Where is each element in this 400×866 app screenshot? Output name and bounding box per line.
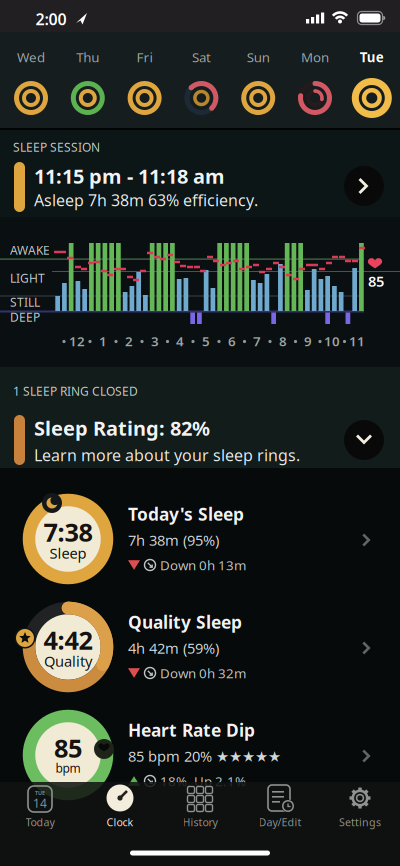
button[interactable]: 7:38 [0,486,400,592]
staticText: STILL [10,294,40,310]
staticText: Quality [44,651,92,671]
staticText: Tue [360,48,384,66]
button[interactable]: Settings [320,782,400,866]
button[interactable]: Mon [287,48,343,128]
staticText: Asleep 7h 38m 63% efficiency. [34,189,258,211]
button[interactable]: 85 [0,702,400,808]
staticText: LIGHT [10,270,45,286]
staticText: 3 [151,332,159,350]
staticText: 2 [125,332,133,350]
staticText: 4:42 [43,623,92,657]
staticText: Today [25,815,54,829]
staticText: Learn more about your sleep rings. [34,444,300,466]
button[interactable]: Day/Edit [240,782,320,866]
button[interactable]: History [160,782,240,866]
button[interactable]: TUE [0,782,80,866]
button[interactable]: Tue [344,48,400,128]
staticText: 11:15 pm - 11:18 am [34,163,225,189]
staticText: Sleep Rating: 82% [34,415,210,441]
staticText: Sat [192,48,211,66]
staticText: 1 SLEEP RING CLOSED [13,383,138,399]
button[interactable]: Wed [3,48,59,128]
staticText: Quality Sleep [128,610,242,633]
staticText: TUE [35,789,45,797]
staticText: 85 [54,731,82,765]
button[interactable]: Fri [117,48,173,128]
staticText: Down 0h 13m [160,556,246,574]
staticText: 8 [279,332,287,350]
staticText: 14 [33,795,47,811]
staticText: Down 0h 32m [160,664,246,682]
staticText: 11 [349,332,365,350]
staticText: Settings [339,815,381,829]
button[interactable]: 11:15 pm - 11:18 am [0,130,400,218]
staticText: 7h 38m (95%) [128,530,219,550]
button[interactable]: Sleep Rating: 82% [0,394,400,482]
staticText: 85 bpm 20% ★★★★★ [128,746,281,766]
staticText: Clock [106,815,133,829]
staticText: 9 [304,332,312,350]
staticText: 7:38 [43,515,92,549]
staticText: 1 [99,332,107,350]
staticText: 7 [253,332,261,350]
staticText: 6 [228,332,236,350]
staticText: Fri [137,48,153,66]
staticText: Sun [247,48,270,66]
staticText: History [182,815,217,829]
staticText: SLEEP SESSION [13,139,100,155]
staticText: 18%, Up 2.1% [160,772,246,790]
staticText: Today's Sleep [128,502,244,525]
button[interactable]: Clock [80,782,160,866]
staticText: 10 [324,332,340,350]
staticText: Wed [17,48,45,66]
staticText: 4h 42m (59%) [128,638,219,658]
staticText: 85 [368,271,384,291]
staticText: Thu [76,48,99,66]
button[interactable]: Sun [230,48,286,128]
staticText: 5 [202,332,210,350]
button[interactable]: 4:42 [0,594,400,700]
staticText: 4 [176,332,184,350]
staticText: AWAKE [10,242,50,258]
staticText: Sleep [49,543,86,563]
staticText: bpm [55,760,80,776]
staticText: DEEP [10,309,40,325]
staticText: Heart Rate Dip [128,718,255,741]
button[interactable]: Thu [60,48,116,128]
staticText: 2:00 [35,8,66,30]
button[interactable]: Sat [173,48,229,128]
staticText: Day/Edit [258,815,301,829]
staticText: 12 [69,332,85,350]
staticText: Mon [301,48,329,66]
